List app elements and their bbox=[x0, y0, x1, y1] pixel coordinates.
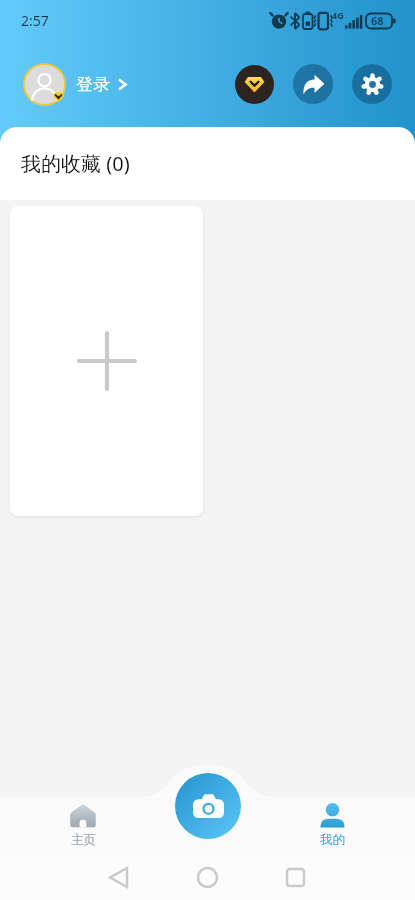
button[interactable]: Share bbox=[293, 64, 333, 104]
button[interactable]: Add favorite bbox=[10, 206, 203, 516]
staticText: 4G bbox=[332, 9, 344, 21]
button[interactable]: 我的 bbox=[306, 803, 358, 848]
button[interactable]: 登录 bbox=[23, 63, 129, 106]
staticText: 我的 bbox=[320, 832, 345, 848]
staticText: 登录 bbox=[76, 74, 110, 95]
staticText: 2:57 bbox=[21, 11, 49, 30]
staticText: 我的收藏 (0) bbox=[21, 150, 130, 177]
button[interactable]: Camera bbox=[175, 773, 241, 839]
button[interactable]: VIP bbox=[235, 65, 274, 104]
button[interactable]: Settings bbox=[352, 64, 392, 104]
button[interactable]: 主页 bbox=[57, 804, 109, 848]
staticText: 主页 bbox=[71, 832, 96, 848]
staticText: 68 bbox=[371, 13, 384, 28]
